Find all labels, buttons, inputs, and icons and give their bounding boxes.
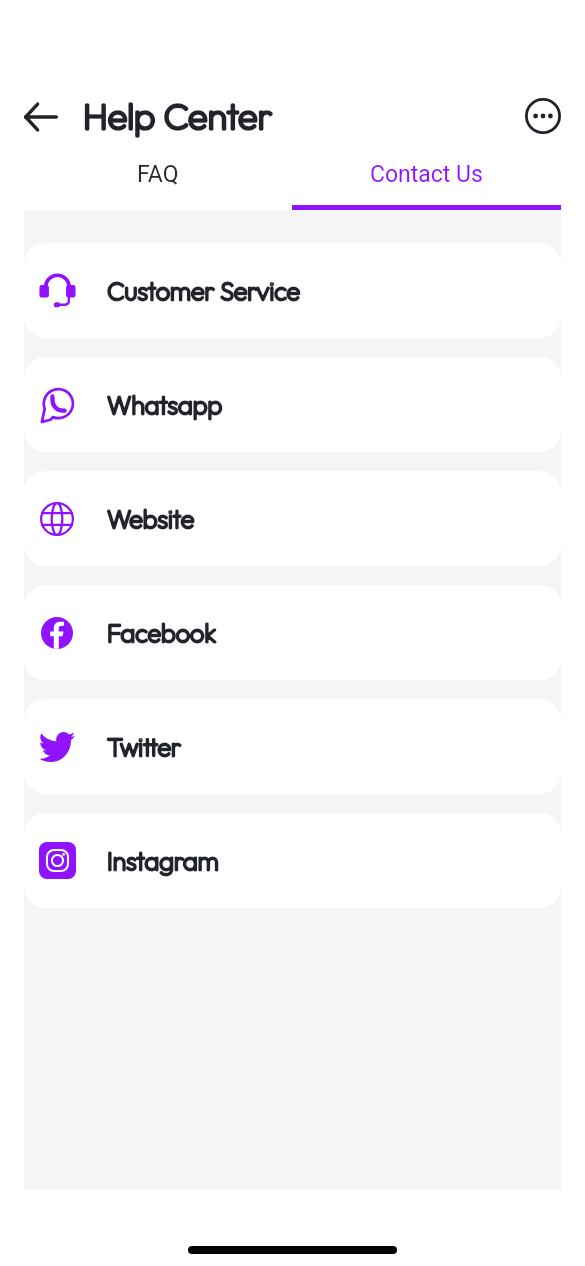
staticText: Whatsapp xyxy=(107,389,223,421)
staticText: Help Center xyxy=(83,93,273,138)
staticText: Twitter xyxy=(107,731,182,763)
staticText: Instagram xyxy=(107,845,219,877)
button[interactable]: Facebook xyxy=(24,585,561,680)
staticText: Website xyxy=(107,503,195,535)
staticText: Whatsapp xyxy=(107,389,223,421)
button[interactable]: Website xyxy=(24,471,561,566)
staticText: Help Center xyxy=(83,93,273,138)
staticText: Customer Service xyxy=(107,275,300,307)
button[interactable]: Instagram xyxy=(24,813,561,908)
button[interactable]: FAQ xyxy=(24,150,292,198)
button[interactable]: Whatsapp xyxy=(24,357,561,452)
staticText: Contact Us xyxy=(370,161,483,188)
staticText: Twitter xyxy=(107,731,182,763)
button[interactable]: Contact Us xyxy=(292,150,561,198)
button[interactable]: Back xyxy=(8,84,74,150)
staticText: Facebook xyxy=(107,617,216,649)
button[interactable]: More options xyxy=(517,90,569,142)
staticText: Instagram xyxy=(107,845,219,877)
button[interactable]: Twitter xyxy=(24,699,561,794)
staticText: Customer Service xyxy=(107,275,300,307)
staticText: FAQ xyxy=(137,161,179,188)
button[interactable]: Customer Service xyxy=(24,243,561,338)
staticText: Facebook xyxy=(107,617,216,649)
staticText: Website xyxy=(107,503,195,535)
